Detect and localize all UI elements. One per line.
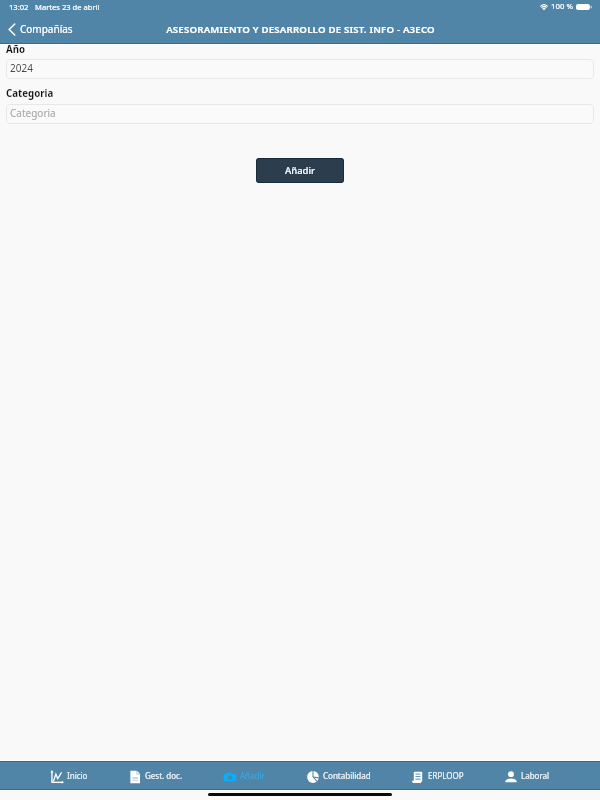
button[interactable]: Back (8, 22, 73, 36)
staticText: 13:02 (9, 2, 29, 12)
button[interactable]: 2024 (6, 59, 594, 79)
staticText: Añadir (285, 164, 316, 177)
staticText: ASESORAMIENTO Y DESARROLLO DE SIST. INFO… (166, 23, 435, 36)
staticText: Inicio (67, 770, 88, 781)
staticText: Añadir (240, 770, 265, 781)
staticText: Laboral (521, 770, 550, 781)
button[interactable]: Gest. doc. (128, 762, 183, 789)
button[interactable]: Inicio (50, 762, 88, 789)
staticText: 100 % (551, 1, 573, 12)
staticText: Martes 23 de abril (35, 2, 100, 12)
button[interactable]: Categoria (6, 104, 594, 124)
button[interactable]: Añadir (256, 158, 344, 183)
staticText: Compañías (20, 22, 73, 36)
button[interactable]: ERPLOOP (411, 762, 464, 789)
staticText: 2024 (10, 61, 33, 75)
staticText: Categoria (6, 87, 54, 100)
other: Wi-Fi (540, 3, 548, 10)
staticText: Año (6, 43, 26, 56)
staticText: Gest. doc. (145, 770, 183, 781)
other: Back (8, 23, 16, 36)
button[interactable]: Laboral (504, 762, 550, 789)
button[interactable]: Contabilidad (306, 762, 371, 789)
other: Battery (576, 3, 592, 11)
staticText: ERPLOOP (428, 770, 464, 781)
button[interactable]: Añadir (223, 762, 265, 789)
staticText: Categoria (10, 106, 56, 120)
staticText: Contabilidad (323, 770, 371, 781)
